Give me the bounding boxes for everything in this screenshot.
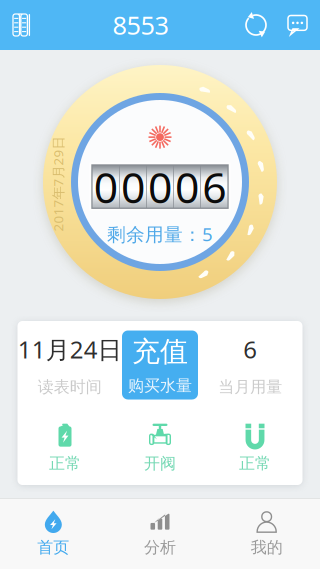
button[interactable]: 分析 [107, 499, 213, 569]
button[interactable]: Meters [0, 0, 47, 50]
staticText: 读表时间 [38, 377, 102, 397]
staticText: 0 [148, 158, 172, 215]
staticText: 正常 [239, 454, 271, 473]
button[interactable]: 首页 [0, 499, 107, 569]
button[interactable]: 我的 [213, 499, 320, 569]
staticText: 首页 [37, 538, 69, 557]
staticText: 8553 [112, 8, 168, 42]
button[interactable]: 充值 [122, 330, 198, 399]
button[interactable]: Refresh [234, 0, 277, 50]
staticText: 当月用量 [218, 377, 282, 397]
staticText: 开阀 [144, 454, 176, 473]
staticText: 分析 [144, 538, 176, 557]
staticText: 11月24日 [18, 333, 122, 365]
staticText: 正常 [49, 454, 81, 473]
staticText: 0 [94, 158, 118, 215]
staticText: 6 [202, 158, 226, 215]
staticText: 剩余用量：5 [107, 222, 213, 246]
staticText: 6 [243, 333, 257, 365]
staticText: 购买水量 [128, 376, 192, 396]
staticText: 2017年7月29日 [10, 175, 105, 193]
button[interactable]: Messages [277, 0, 320, 50]
staticText: 我的 [251, 538, 283, 557]
staticText: 0 [175, 158, 199, 215]
staticText: 0 [121, 158, 145, 215]
staticText: 充值 [132, 334, 188, 369]
